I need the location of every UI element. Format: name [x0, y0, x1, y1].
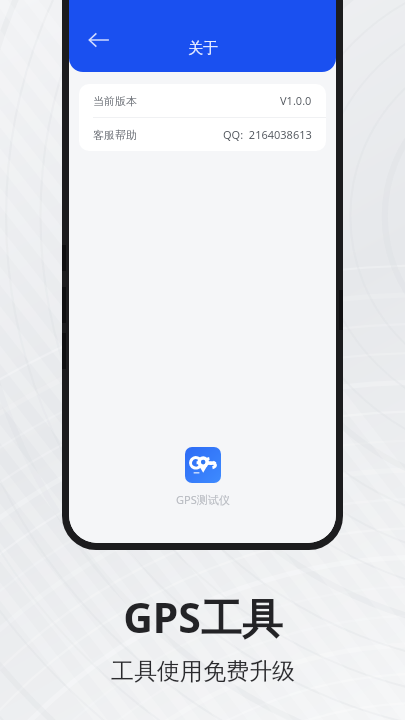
staticText: V1.0.0: [280, 93, 312, 108]
button[interactable]: Back: [77, 18, 121, 62]
staticText: 当前版本: [93, 94, 137, 108]
staticText: QQ: 2164038613: [223, 127, 312, 142]
button[interactable]: GPS测试仪 app icon: [185, 447, 221, 483]
button[interactable]: 当前版本: [79, 84, 326, 117]
button[interactable]: 客服帮助: [79, 118, 326, 151]
staticText: GPS工具: [123, 589, 283, 645]
staticText: 工具使用免费升级: [111, 657, 295, 686]
staticText: GPS测试仪: [176, 492, 230, 507]
staticText: 关于: [188, 39, 218, 58]
staticText: 客服帮助: [93, 128, 137, 142]
